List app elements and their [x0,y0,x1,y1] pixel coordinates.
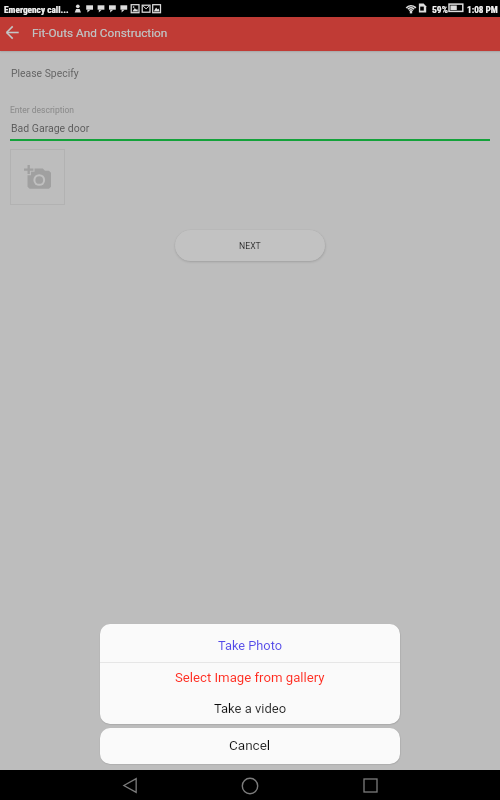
staticText: NEXT [239,241,261,251]
staticText: Enter description [10,105,75,115]
button[interactable]: Home [225,771,275,800]
staticText: Emergency call... [4,4,69,15]
button[interactable]: NEXT [175,230,325,261]
staticText: Fit-Outs And Construction [32,26,168,40]
staticText: Select Image from gallery [175,670,325,685]
staticText: 1:08 PM [467,4,498,15]
button[interactable]: Cancel [100,728,400,764]
staticText: Take Photo [218,638,282,653]
button[interactable]: Take a video [100,694,400,724]
staticText: Take a video [214,701,287,716]
button[interactable]: Take Photo [100,624,400,662]
staticText: Bad Garage door [11,122,90,134]
button[interactable]: Recent apps [345,770,395,800]
button[interactable]: Add a photo [10,149,65,205]
button[interactable]: Back [105,770,155,800]
staticText: 59% [432,4,448,15]
button[interactable]: Back [4,24,21,41]
button[interactable]: Select Image from gallery [100,663,400,694]
staticText: Please Specify [11,67,79,79]
staticText: Cancel [229,737,271,753]
